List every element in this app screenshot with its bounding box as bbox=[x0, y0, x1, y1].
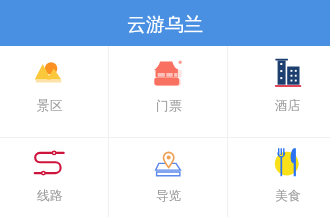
staticText: 门票 bbox=[156, 98, 182, 114]
staticText: 云游乌兰 bbox=[127, 13, 203, 37]
staticText: 美食 bbox=[275, 188, 301, 204]
staticText: 景区 bbox=[37, 98, 63, 114]
staticText: 线路 bbox=[37, 188, 63, 204]
staticText: 酒店 bbox=[275, 98, 301, 114]
button[interactable]: 景区 bbox=[0, 46, 109, 137]
button[interactable]: 云游乌兰 bbox=[0, 0, 330, 46]
staticText: 导览 bbox=[156, 188, 182, 204]
button[interactable]: 美食 bbox=[228, 138, 330, 217]
button[interactable]: 线路 bbox=[0, 138, 109, 217]
button[interactable]: 导览 bbox=[109, 138, 228, 217]
button[interactable]: 酒店 bbox=[228, 46, 330, 137]
button[interactable]: 门票 bbox=[109, 46, 228, 137]
